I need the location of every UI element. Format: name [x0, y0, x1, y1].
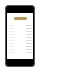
button[interactable]: [7, 30, 33, 33]
button[interactable]: [7, 45, 33, 48]
button[interactable]: [7, 48, 33, 51]
button[interactable]: [7, 36, 33, 39]
button[interactable]: [7, 24, 33, 27]
button[interactable]: [14, 17, 27, 20]
button[interactable]: [7, 27, 33, 30]
button[interactable]: [7, 42, 33, 45]
button[interactable]: [7, 33, 33, 36]
button[interactable]: [7, 51, 33, 54]
button[interactable]: [7, 39, 33, 42]
